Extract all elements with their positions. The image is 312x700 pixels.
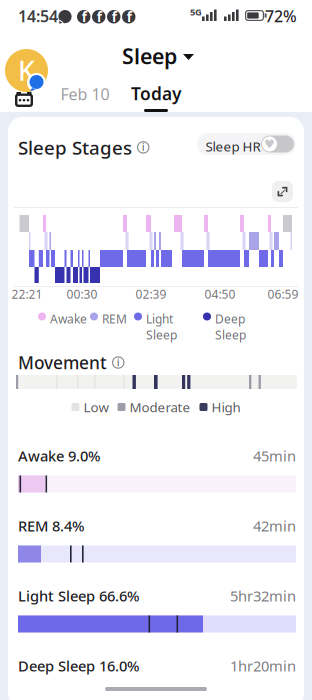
staticText: Moderate: [129, 398, 190, 416]
button[interactable]: Device: [15, 92, 33, 107]
staticText: Deep: [215, 311, 245, 327]
staticText: Sleep: [215, 327, 246, 343]
staticText: Awake 9.0%: [18, 446, 100, 465]
staticText: Today: [131, 82, 181, 105]
button[interactable]: Profile: [5, 49, 48, 92]
staticText: ♥: [264, 137, 275, 151]
staticText: Sleep: [122, 42, 177, 70]
staticText: Sleep: [146, 327, 177, 343]
staticText: f: [82, 8, 87, 26]
button[interactable]: Feb 10: [60, 83, 109, 105]
button[interactable]: Expand chart: [272, 181, 293, 202]
staticText: 42min: [253, 516, 296, 535]
button[interactable]: Today: [131, 82, 181, 112]
staticText: Low: [83, 398, 108, 416]
staticText: f: [127, 8, 132, 26]
staticText: 00:30: [66, 286, 97, 302]
staticText: i: [142, 140, 145, 154]
staticText: Deep Sleep 16.0%: [18, 656, 139, 675]
staticText: f: [112, 8, 117, 26]
button[interactable]: Sleep: [122, 42, 194, 70]
staticText: f: [97, 8, 102, 26]
staticText: 5G: [190, 6, 202, 18]
staticText: REM 8.4%: [18, 516, 84, 535]
staticText: 14:54: [18, 5, 58, 27]
staticText: i: [117, 355, 120, 369]
button[interactable]: Sleep HR: [197, 133, 296, 155]
staticText: Sleep HR: [205, 137, 260, 155]
staticText: High: [211, 398, 240, 416]
staticText: REM: [102, 311, 127, 327]
staticText: 04:50: [204, 286, 235, 302]
staticText: Feb 10: [60, 83, 109, 105]
staticText: 02:39: [135, 286, 166, 302]
staticText: 06:59: [267, 286, 298, 302]
staticText: Light Sleep 66.6%: [18, 586, 139, 605]
staticText: K: [18, 53, 35, 88]
staticText: Awake: [50, 311, 87, 327]
staticText: 22:21: [11, 286, 42, 302]
staticText: Light: [146, 311, 173, 327]
staticText: 1hr20min: [230, 656, 296, 675]
staticText: 5hr32min: [230, 586, 296, 605]
staticText: 45min: [253, 446, 296, 465]
staticText: Sleep Stages: [18, 135, 132, 160]
staticText: Movement: [18, 351, 107, 374]
staticText: 72%: [265, 5, 297, 27]
